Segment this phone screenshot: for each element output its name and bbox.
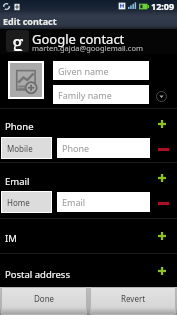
button[interactable]: Add Email (146, 168, 177, 188)
button[interactable]: IM (0, 218, 177, 253)
button[interactable]: Email (57, 192, 150, 212)
button[interactable]: Revert (90, 287, 176, 315)
staticText: IM (5, 232, 17, 245)
button[interactable]: Mobile (2, 138, 51, 158)
staticText: Edit contact (3, 15, 57, 27)
staticText: Family name (58, 89, 112, 101)
button[interactable]: Family name (53, 85, 149, 104)
button[interactable]: Phone (57, 138, 150, 158)
button[interactable]: Done (1, 287, 87, 315)
button[interactable]: Add contact photo (10, 63, 42, 97)
staticText: Email (62, 196, 86, 208)
button[interactable]: g (0, 29, 177, 54)
button[interactable]: Add IM (146, 226, 177, 246)
staticText: Revert (121, 293, 146, 304)
staticText: Done (34, 293, 55, 304)
staticText: Phone (62, 142, 90, 154)
button[interactable]: Phone (0, 108, 177, 137)
staticText: Email (5, 175, 30, 188)
staticText: Google contact (32, 30, 125, 48)
button[interactable]: Remove Phone (150, 138, 177, 160)
button[interactable]: Remove Email (150, 192, 177, 214)
staticText: Home (7, 197, 30, 208)
button[interactable]: Email (0, 162, 177, 191)
staticText: Mobile (7, 143, 33, 154)
button[interactable]: Given name (53, 61, 149, 80)
button[interactable]: Postal address (0, 253, 177, 285)
button[interactable]: Home (2, 192, 51, 212)
staticText: marten.gajda@googlemail.com (32, 43, 143, 53)
button[interactable]: Expand name fields (153, 88, 170, 105)
staticText: 12:09 (151, 0, 175, 12)
staticText: Given name (58, 65, 109, 77)
button[interactable]: Add Postal address (146, 261, 177, 281)
staticText: Phone (5, 120, 34, 133)
staticText: Postal address (5, 268, 70, 281)
button[interactable]: Add Phone (146, 114, 177, 134)
staticText: g (12, 30, 24, 51)
